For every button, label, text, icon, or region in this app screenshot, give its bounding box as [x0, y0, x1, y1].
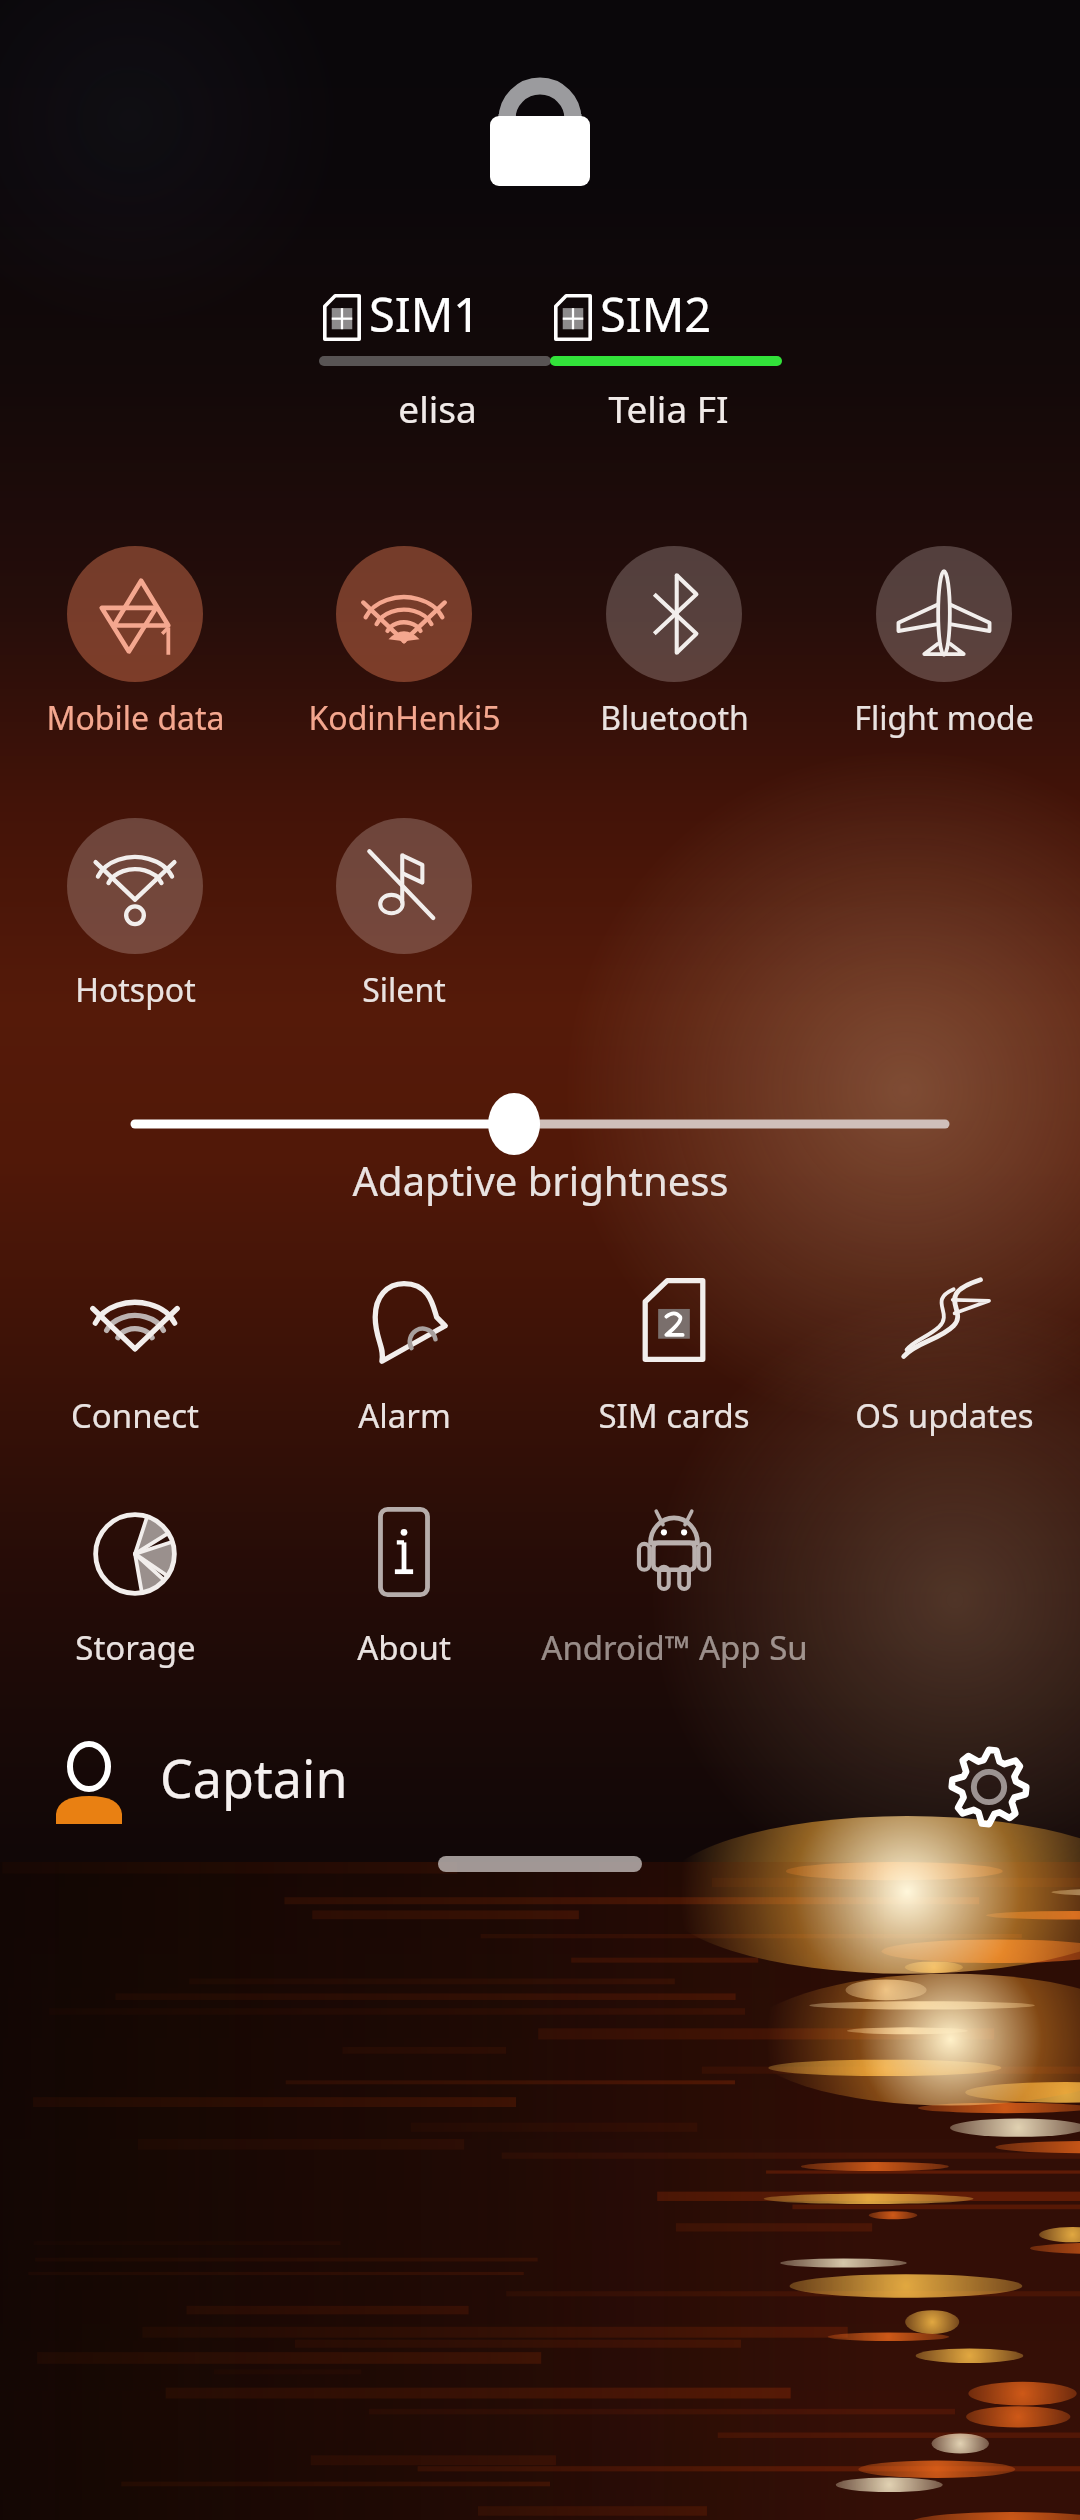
staticText: Hotspot — [75, 968, 196, 1012]
button[interactable]: Flight mode — [876, 546, 1012, 682]
staticText: SIM cards — [598, 1393, 750, 1438]
staticText: SIM1 — [369, 282, 481, 344]
button[interactable]: Settings — [948, 1746, 1030, 1828]
staticText: Adaptive brightness — [352, 1153, 729, 1207]
staticText: elisa — [398, 383, 477, 433]
staticText: Telia FI — [608, 383, 729, 433]
staticText: Mobile data — [46, 696, 225, 740]
button[interactable]: Alarm — [356, 1272, 452, 1368]
staticText: Alarm — [358, 1393, 451, 1438]
button[interactable]: Storage — [87, 1504, 183, 1600]
staticText: Connect — [71, 1393, 199, 1438]
staticText: About — [357, 1625, 451, 1670]
button[interactable]: KodinHenki5 — [336, 546, 472, 682]
button[interactable]: OS updates — [896, 1272, 992, 1368]
button[interactable]: About — [356, 1504, 452, 1600]
button[interactable]: Locked — [462, 58, 618, 203]
staticText: Bluetooth — [600, 696, 749, 740]
button[interactable]: SIM cards — [626, 1272, 722, 1368]
staticText: Silent — [362, 968, 446, 1012]
staticText: Android™ App Su — [541, 1625, 808, 1670]
staticText: Storage — [75, 1625, 196, 1670]
button[interactable]: SIM1 elisa — [267, 288, 607, 460]
button[interactable]: Mobile data — [67, 546, 203, 682]
button[interactable]: Connect — [87, 1272, 183, 1368]
button[interactable]: Hotspot — [67, 818, 203, 954]
button[interactable]: Brightness — [110, 1088, 970, 1160]
staticText: OS updates — [855, 1393, 1034, 1438]
button[interactable]: Bluetooth — [606, 546, 742, 682]
staticText: Flight mode — [854, 696, 1034, 740]
staticText: Captain — [160, 1742, 348, 1812]
button[interactable]: Android™ App Su — [626, 1504, 722, 1600]
staticText: KodinHenki5 — [308, 696, 501, 740]
button[interactable]: Silent — [336, 818, 472, 954]
staticText: SIM2 — [600, 282, 712, 344]
button[interactable]: SIM2 Telia FI — [498, 288, 838, 460]
button[interactable]: Captain, current user — [40, 1730, 560, 1840]
